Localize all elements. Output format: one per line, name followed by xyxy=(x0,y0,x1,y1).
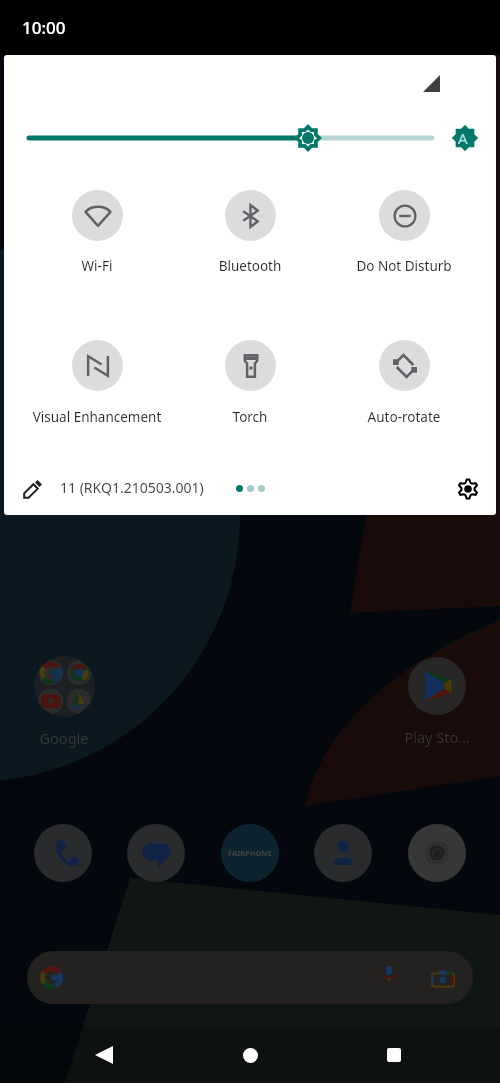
button[interactable]: Play Sto… xyxy=(392,653,482,753)
staticText: 11 (RKQ1.210503.001) xyxy=(60,478,204,497)
button[interactable]: Wi-Fi xyxy=(21,180,173,280)
staticText: Visual Enhancement xyxy=(21,408,173,426)
staticText: Play Sto… xyxy=(392,727,482,747)
button[interactable]: Messages xyxy=(127,824,185,882)
button[interactable]: Edit xyxy=(18,474,47,503)
button[interactable]: Google xyxy=(19,652,109,752)
button[interactable]: Camera xyxy=(408,824,466,882)
staticText: Torch xyxy=(174,408,326,426)
button[interactable]: Back xyxy=(80,1031,128,1079)
button[interactable]: Fairphone xyxy=(221,824,279,882)
staticText: Google xyxy=(19,728,109,748)
staticText: 10:00 xyxy=(22,16,66,39)
button[interactable]: Do Not Disturb xyxy=(328,180,480,280)
button[interactable]: Contacts xyxy=(314,824,372,882)
button[interactable]: Phone xyxy=(34,824,92,882)
staticText: Bluetooth xyxy=(174,257,326,275)
button[interactable]: Settings xyxy=(453,474,482,503)
button[interactable]: Torch xyxy=(174,330,326,431)
button[interactable]: Recents xyxy=(370,1031,418,1079)
staticText: FAIRPHONE xyxy=(228,848,272,858)
button[interactable]: Bluetooth xyxy=(174,180,326,280)
button[interactable]: Home xyxy=(226,1031,274,1079)
staticText: Do Not Disturb xyxy=(328,257,480,275)
staticText: A xyxy=(458,128,468,148)
button[interactable]: Search xyxy=(27,951,473,1004)
staticText: Auto-rotate xyxy=(328,408,480,426)
button[interactable]: Visual Enhancement xyxy=(21,330,173,431)
button[interactable]: Auto-rotate xyxy=(328,330,480,431)
staticText: Wi-Fi xyxy=(21,257,173,275)
